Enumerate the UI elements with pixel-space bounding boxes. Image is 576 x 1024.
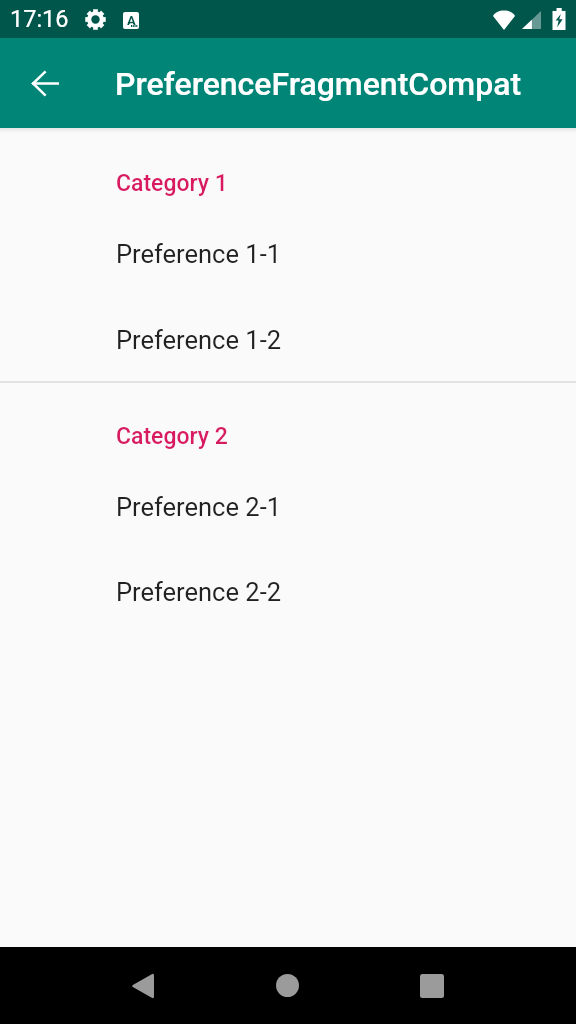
button[interactable]: Preference 1-2 bbox=[0, 297, 576, 383]
staticText: Preference 2-2 bbox=[116, 577, 282, 607]
staticText: Preference 1-2 bbox=[116, 325, 282, 355]
button[interactable]: Preference 2-1 bbox=[0, 464, 576, 550]
staticText: Category 2 bbox=[116, 423, 228, 450]
button[interactable]: Navigate up bbox=[14, 51, 78, 115]
button[interactable]: Recent apps bbox=[395, 949, 468, 1022]
staticText: 17:16 bbox=[10, 5, 69, 33]
button[interactable]: Preference 2-2 bbox=[0, 549, 576, 635]
button[interactable]: Preference 1-1 bbox=[0, 211, 576, 297]
staticText: PreferenceFragmentCompat bbox=[115, 65, 522, 103]
staticText: Preference 2-1 bbox=[116, 492, 282, 522]
staticText: Category 1 bbox=[116, 170, 228, 197]
staticText: A bbox=[127, 13, 136, 28]
button[interactable]: Back bbox=[106, 949, 179, 1022]
button[interactable]: Home bbox=[251, 949, 324, 1022]
staticText: Preference 1-1 bbox=[116, 239, 282, 269]
